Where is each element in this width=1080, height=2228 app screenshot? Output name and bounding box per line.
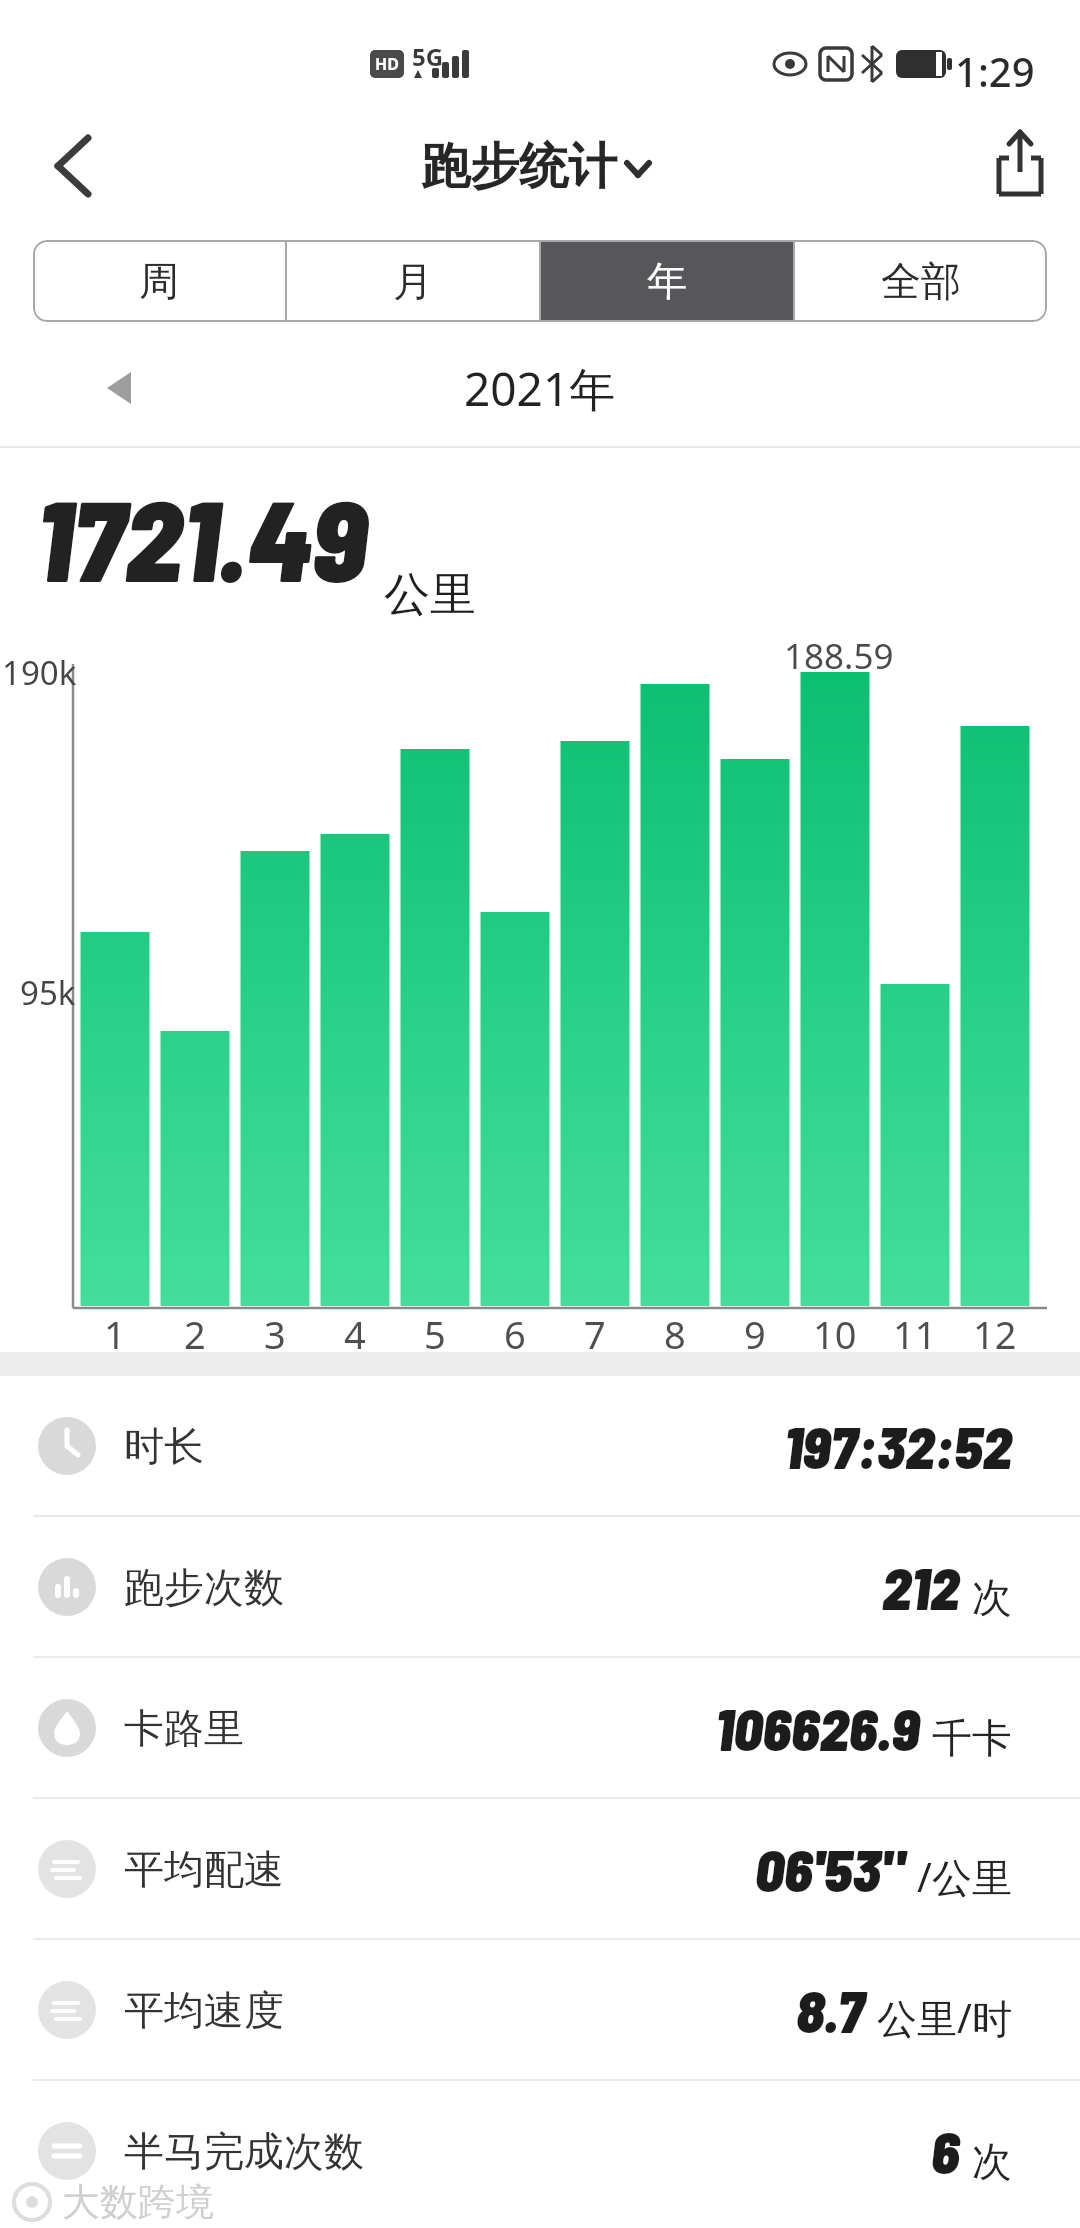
button[interactable] xyxy=(95,360,151,416)
button[interactable] xyxy=(985,122,1055,206)
staticText: 次 xyxy=(972,2136,1012,2186)
staticText: 周 xyxy=(139,256,179,306)
staticText: 6 xyxy=(504,1308,526,1360)
staticText: 公里/时 xyxy=(877,1990,1012,2045)
staticText: 2 xyxy=(184,1308,206,1360)
staticText: 1721.49 xyxy=(36,468,367,605)
staticText: 半马完成次数 xyxy=(124,2126,364,2176)
staticText: 197:32:52 xyxy=(784,1411,1012,1481)
button[interactable]: 跑步统计 xyxy=(421,136,659,198)
staticText: 95k xyxy=(20,970,76,1015)
staticText: 190k xyxy=(2,650,77,695)
button[interactable]: 平均速度 xyxy=(0,1940,1080,2079)
staticText: 11 xyxy=(893,1308,937,1360)
staticText: 06'53" xyxy=(755,1834,905,1904)
staticText: 1:29 xyxy=(955,44,1035,98)
button[interactable]: 半马完成次数 xyxy=(0,2081,1080,2220)
button[interactable]: 年 xyxy=(541,240,793,322)
staticText: 年 xyxy=(647,256,687,306)
staticText: 2021年 xyxy=(464,357,616,420)
staticText: 大数跨境 xyxy=(62,2178,214,2226)
staticText: 跑步次数 xyxy=(124,1562,284,1612)
staticText: 188.59 xyxy=(784,632,894,680)
staticText: 106626.9 xyxy=(715,1693,920,1763)
staticText: 5 xyxy=(424,1308,446,1360)
staticText: 8 xyxy=(664,1308,686,1360)
staticText: 7 xyxy=(584,1308,606,1360)
button[interactable]: 周 xyxy=(33,240,285,322)
staticText: 1 xyxy=(104,1308,126,1360)
staticText: 次 xyxy=(972,1572,1012,1622)
staticText: 6 xyxy=(931,2116,960,2186)
staticText: 3 xyxy=(264,1308,286,1360)
button[interactable] xyxy=(36,126,116,206)
staticText: 全部 xyxy=(881,256,961,306)
staticText: 跑步统计 xyxy=(421,136,617,198)
button[interactable]: 卡路里 xyxy=(0,1658,1080,1797)
button[interactable]: 时长 xyxy=(0,1376,1080,1515)
staticText: HD xyxy=(375,53,399,75)
staticText: 千卡 xyxy=(932,1713,1012,1763)
button[interactable]: 平均配速 xyxy=(0,1799,1080,1938)
staticText: 8.7 xyxy=(796,1975,865,2045)
staticText: 5G xyxy=(412,40,444,73)
staticText: 平均配速 xyxy=(124,1844,284,1894)
staticText: 月 xyxy=(393,256,433,306)
button[interactable]: 全部 xyxy=(795,240,1047,322)
staticText: 12 xyxy=(973,1308,1017,1360)
staticText: 10 xyxy=(813,1308,857,1360)
button[interactable]: 跑步次数 xyxy=(0,1517,1080,1656)
staticText: 4 xyxy=(344,1308,366,1360)
staticText: 时长 xyxy=(124,1421,204,1471)
staticText: 9 xyxy=(744,1308,766,1360)
staticText: /公里 xyxy=(917,1849,1012,1904)
staticText: 公里 xyxy=(384,566,476,624)
staticText: 平均速度 xyxy=(124,1985,284,2035)
staticText: 212 xyxy=(882,1552,960,1622)
button[interactable]: 月 xyxy=(287,240,539,322)
staticText: 卡路里 xyxy=(124,1703,244,1753)
